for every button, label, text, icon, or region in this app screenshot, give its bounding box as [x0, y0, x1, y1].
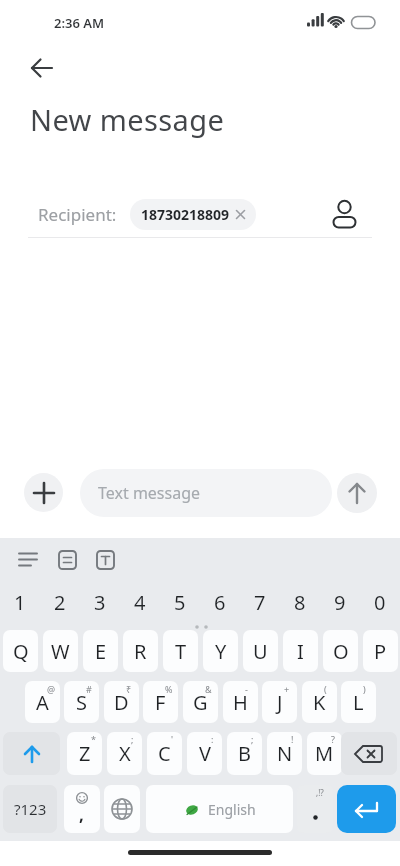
staticText: P: [374, 638, 387, 665]
staticText: +: [284, 683, 290, 695]
staticText: D: [114, 689, 129, 716]
button[interactable]: P: [363, 630, 398, 672]
staticText: 8: [294, 589, 306, 616]
button[interactable]: B: [227, 732, 262, 775]
staticText: N: [277, 740, 293, 767]
staticText: J: [277, 689, 283, 716]
staticText: New message: [30, 100, 225, 139]
staticText: 0: [374, 589, 386, 616]
button[interactable]: Q: [3, 630, 38, 672]
button[interactable]: S: [64, 681, 99, 723]
button[interactable]: V: [187, 732, 222, 775]
staticText: ?123: [14, 799, 47, 819]
staticText: 4: [134, 589, 146, 616]
button[interactable]: C: [147, 732, 182, 775]
button[interactable]: [337, 473, 377, 513]
button[interactable]: W: [43, 630, 78, 672]
staticText: 6: [214, 589, 226, 616]
staticText: *: [91, 733, 96, 745]
staticText: F: [155, 689, 166, 716]
button[interactable]: [18, 550, 118, 570]
button[interactable]: J: [262, 681, 297, 723]
button[interactable]: A: [25, 681, 60, 723]
button[interactable]: L: [341, 681, 376, 723]
button[interactable]: 4: [120, 583, 160, 621]
button[interactable]: 3: [80, 583, 120, 621]
button[interactable]: [337, 785, 396, 833]
button[interactable]: [104, 785, 140, 833]
staticText: W: [51, 638, 70, 665]
staticText: E: [95, 638, 107, 665]
staticText: ': [171, 733, 174, 745]
button[interactable]: M: [307, 732, 342, 775]
button[interactable]: Y: [203, 630, 238, 672]
button[interactable]: 18730218809: [130, 199, 256, 230]
button[interactable]: ,!?: [297, 785, 333, 833]
staticText: 9: [334, 589, 346, 616]
staticText: K: [313, 689, 326, 716]
button[interactable]: E: [83, 630, 118, 672]
button[interactable]: [24, 473, 63, 512]
button[interactable]: F: [143, 681, 178, 723]
staticText: :: [211, 733, 214, 745]
button[interactable]: G: [183, 681, 218, 723]
staticText: English: [208, 800, 256, 819]
button[interactable]: 5: [160, 583, 200, 621]
button[interactable]: 0: [360, 583, 400, 621]
button[interactable]: [26, 52, 58, 84]
button[interactable]: Text message: [80, 469, 332, 517]
staticText: U: [253, 638, 268, 665]
staticText: 1: [14, 589, 26, 616]
staticText: Recipient:: [38, 203, 117, 226]
button[interactable]: ,: [64, 785, 100, 833]
button[interactable]: H: [223, 681, 258, 723]
button[interactable]: O: [323, 630, 358, 672]
button[interactable]: N: [267, 732, 302, 775]
button[interactable]: U: [243, 630, 278, 672]
button[interactable]: [3, 732, 60, 775]
staticText: X: [119, 740, 131, 767]
staticText: 7: [254, 589, 266, 616]
staticText: V: [199, 740, 211, 767]
staticText: G: [193, 689, 208, 716]
button[interactable]: T: [163, 630, 198, 672]
button[interactable]: D: [104, 681, 139, 723]
button[interactable]: 1: [0, 583, 40, 621]
button[interactable]: English: [146, 785, 293, 833]
staticText: 5: [174, 589, 186, 616]
staticText: C: [158, 740, 171, 767]
staticText: Q: [13, 638, 29, 665]
staticText: B: [238, 740, 251, 767]
button[interactable]: K: [302, 681, 337, 723]
staticText: ₹: [126, 683, 132, 695]
button[interactable]: 9: [320, 583, 360, 621]
button[interactable]: R: [123, 630, 158, 672]
staticText: %: [165, 683, 173, 695]
staticText: 3: [94, 589, 106, 616]
staticText: ?: [331, 733, 335, 745]
staticText: ,!?: [316, 787, 324, 798]
button[interactable]: Z: [67, 732, 102, 775]
staticText: Y: [215, 638, 227, 665]
staticText: H: [233, 689, 248, 716]
button[interactable]: X: [107, 732, 142, 775]
button[interactable]: [330, 196, 360, 232]
staticText: 18730218809: [141, 205, 230, 224]
button[interactable]: 8: [280, 583, 320, 621]
staticText: I: [297, 638, 304, 665]
button[interactable]: 6: [200, 583, 240, 621]
staticText: !: [291, 733, 294, 745]
button[interactable]: 7: [240, 583, 280, 621]
staticText: M: [315, 740, 334, 767]
staticText: A: [36, 689, 49, 716]
staticText: S: [76, 689, 87, 716]
staticText: ,: [79, 803, 84, 826]
button[interactable]: 2: [40, 583, 80, 621]
button[interactable]: [341, 732, 397, 775]
staticText: Text message: [98, 482, 201, 504]
staticText: ): [363, 683, 366, 695]
button[interactable]: ?123: [3, 785, 57, 833]
staticText: ;: [131, 733, 134, 745]
button[interactable]: I: [283, 630, 318, 672]
staticText: @: [47, 683, 56, 695]
